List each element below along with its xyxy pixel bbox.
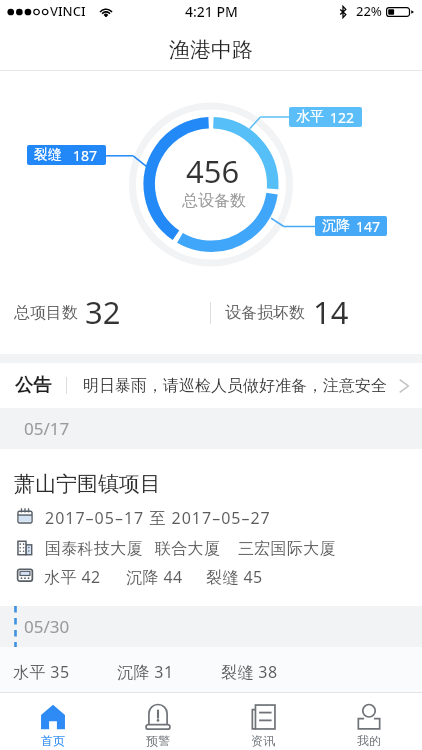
staticText: VINCI bbox=[50, 2, 86, 20]
staticText: 05/30 bbox=[24, 615, 70, 638]
staticText: 总设备数 bbox=[182, 191, 246, 211]
button[interactable]: 预警 bbox=[105, 693, 210, 750]
staticText: 公告 bbox=[15, 374, 51, 397]
staticText: 14 bbox=[313, 291, 349, 333]
staticText: 我的 bbox=[357, 733, 381, 748]
staticText: 联合大厦 bbox=[155, 539, 221, 559]
staticText: 渔港中路 bbox=[169, 37, 253, 63]
button[interactable]: 水平 35 bbox=[0, 647, 422, 692]
staticText: 沉降 bbox=[322, 217, 350, 235]
staticText: 沉降 44 bbox=[126, 566, 183, 588]
staticText: 明日暴雨，请巡检人员做好准备，注意安全 bbox=[83, 376, 387, 396]
staticText: 2017–05–17 至 2017–05–27 bbox=[45, 507, 271, 529]
button[interactable]: 沉降 bbox=[315, 216, 387, 236]
staticText: 裂缝 bbox=[34, 146, 62, 164]
staticText: 456 bbox=[186, 150, 240, 192]
staticText: 22% bbox=[356, 2, 382, 20]
staticText: 沉降 31 bbox=[117, 661, 174, 683]
button[interactable]: 资讯 bbox=[210, 693, 316, 750]
staticText: 裂缝 38 bbox=[221, 661, 278, 683]
staticText: 水平 42 bbox=[44, 566, 101, 588]
staticText: 预警 bbox=[146, 733, 170, 748]
staticText: 裂缝 45 bbox=[206, 566, 263, 588]
staticText: 萧山宁围镇项目 bbox=[14, 471, 161, 497]
staticText: 水平 bbox=[296, 108, 324, 126]
staticText: 32 bbox=[85, 291, 121, 333]
staticText: 122 bbox=[330, 108, 355, 127]
button[interactable]: 首页 bbox=[0, 693, 105, 750]
staticText: 资讯 bbox=[251, 733, 275, 748]
button[interactable]: 我的 bbox=[316, 693, 422, 750]
button[interactable]: 裂缝 bbox=[27, 145, 106, 165]
staticText: 国泰科技大厦 bbox=[45, 539, 143, 559]
other: More bbox=[399, 379, 409, 393]
staticText: 首页 bbox=[41, 733, 65, 748]
button[interactable]: 水平 bbox=[289, 107, 362, 127]
staticText: 05/17 bbox=[24, 417, 70, 440]
staticText: 187 bbox=[73, 146, 98, 165]
staticText: 设备损坏数 bbox=[225, 303, 305, 323]
staticText: 三宏国际大厦 bbox=[238, 539, 336, 559]
staticText: 147 bbox=[356, 217, 381, 236]
staticText: 水平 35 bbox=[13, 661, 70, 683]
staticText: 总项目数 bbox=[14, 303, 78, 323]
button[interactable]: 公告 bbox=[0, 363, 422, 408]
button[interactable]: 萧山宁围镇项目 bbox=[0, 449, 422, 606]
staticText: 4:21 PM bbox=[185, 2, 238, 21]
